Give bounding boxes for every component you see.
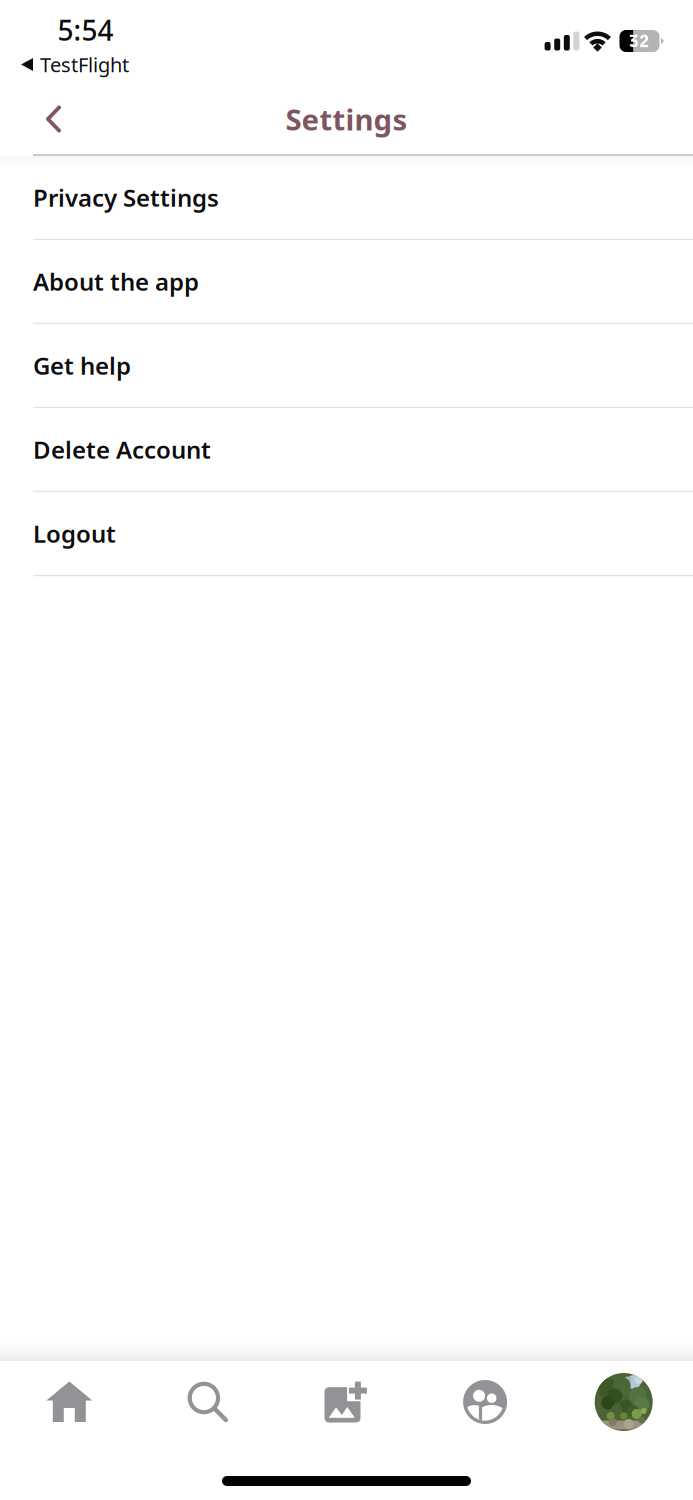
staticText: Privacy Settings <box>33 182 219 213</box>
button[interactable]: Back <box>0 89 87 148</box>
staticText: 5:54 <box>57 11 113 49</box>
button[interactable]: Friends <box>416 1364 554 1440</box>
button[interactable]: Get help <box>0 324 693 408</box>
button[interactable]: New post <box>277 1364 416 1440</box>
button[interactable]: Search <box>139 1364 277 1440</box>
button[interactable]: Delete Account <box>0 408 693 492</box>
staticText: Delete Account <box>33 434 211 465</box>
staticText: About the app <box>33 266 199 297</box>
staticText: Settings <box>285 99 407 138</box>
button[interactable]: Home <box>0 1364 139 1440</box>
button[interactable]: Profile <box>554 1364 693 1440</box>
staticText: Get help <box>33 350 131 381</box>
button[interactable]: Privacy Settings <box>0 156 693 240</box>
staticText: Logout <box>33 518 116 549</box>
staticText: TestFlight <box>40 51 129 78</box>
button[interactable]: Logout <box>0 492 693 576</box>
button[interactable]: About the app <box>0 240 693 324</box>
